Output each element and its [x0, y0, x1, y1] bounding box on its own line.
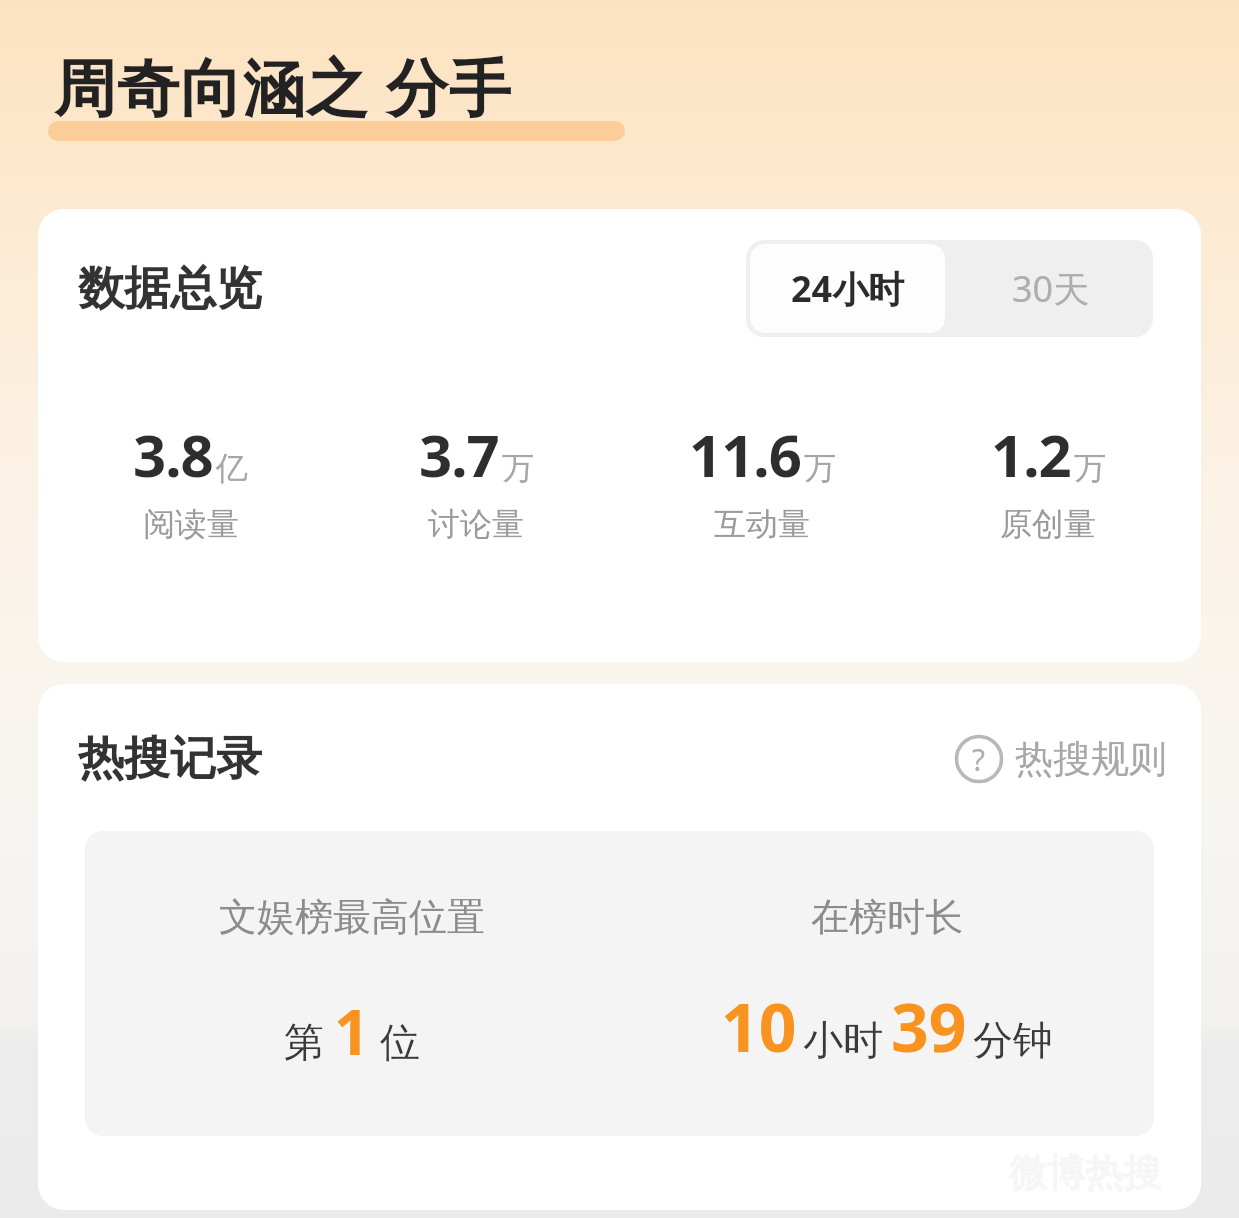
- staticText: 第: [284, 1017, 324, 1067]
- staticText: 24小时: [791, 264, 905, 313]
- staticText: 3.7: [419, 415, 499, 494]
- button[interactable]: 24小时: [750, 244, 945, 333]
- staticText: 阅读量: [143, 504, 239, 544]
- staticText: 万: [1074, 448, 1106, 488]
- staticText: 讨论量: [428, 504, 524, 544]
- staticText: 互动量: [714, 504, 810, 544]
- staticText: 微博热搜: [1009, 1149, 1161, 1197]
- staticText: 万: [804, 448, 836, 488]
- staticText: 位: [380, 1017, 420, 1067]
- other: 热搜规则帮助: [953, 733, 1005, 785]
- staticText: 分钟: [973, 1015, 1053, 1065]
- staticText: 亿: [216, 448, 248, 488]
- staticText: ?: [972, 739, 986, 780]
- staticText: 数据总览: [78, 260, 262, 318]
- staticText: 原创量: [1000, 504, 1096, 544]
- staticText: 1.2: [991, 415, 1071, 494]
- staticText: 11.6: [689, 415, 801, 494]
- staticText: 39: [891, 981, 967, 1071]
- staticText: 30天: [1012, 264, 1090, 313]
- button[interactable]: 30天: [949, 240, 1153, 337]
- staticText: 10: [721, 981, 797, 1071]
- staticText: 万: [502, 448, 534, 488]
- staticText: 1: [334, 989, 370, 1073]
- staticText: 热搜规则: [1015, 735, 1167, 783]
- staticText: 周奇向涵之 分手: [54, 44, 513, 129]
- staticText: 热搜记录: [78, 730, 262, 788]
- staticText: 文娱榜最高位置: [219, 893, 485, 941]
- staticText: 3.8: [133, 415, 213, 494]
- button[interactable]: 周奇向涵之 分手: [48, 44, 625, 141]
- button[interactable]: 热搜规则帮助: [949, 729, 1171, 789]
- staticText: 小时: [803, 1015, 883, 1065]
- staticText: 在榜时长: [811, 893, 963, 941]
